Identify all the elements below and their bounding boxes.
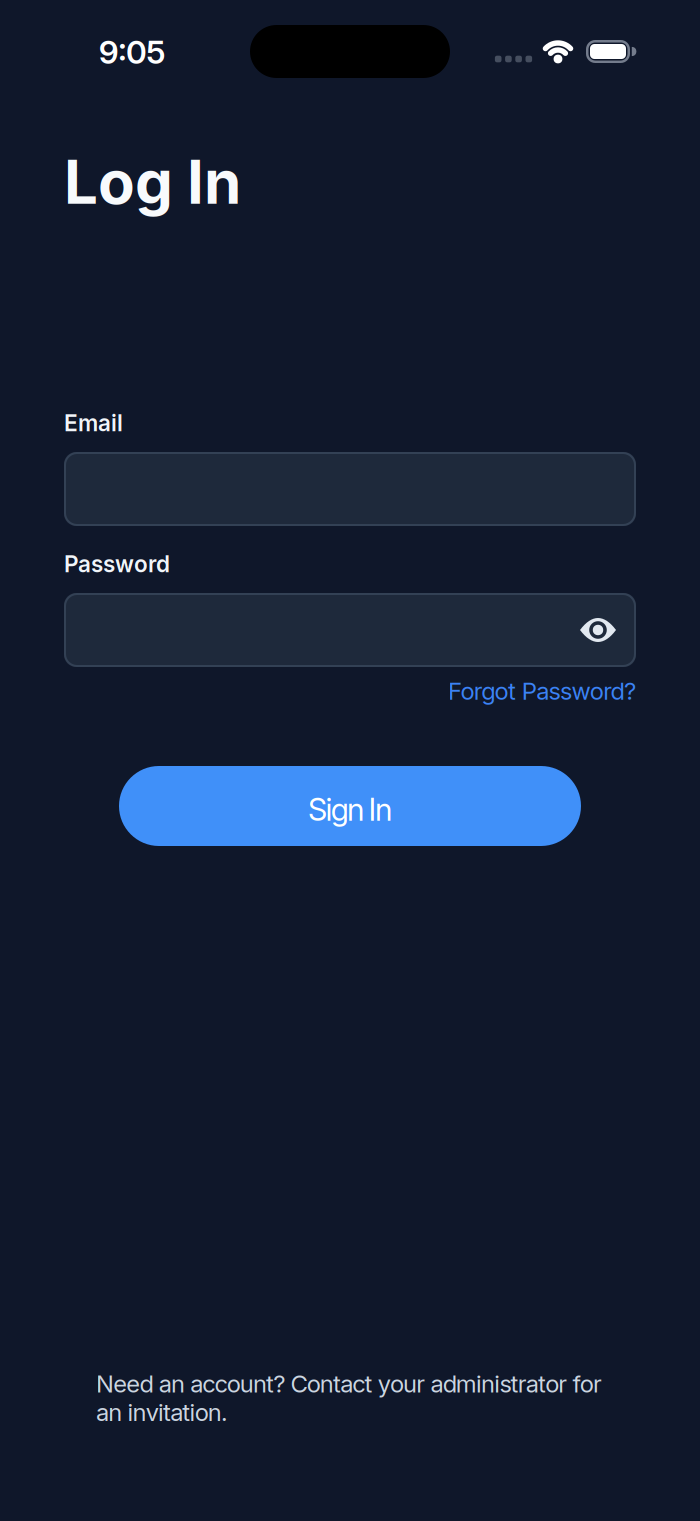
staticText: Log In (64, 147, 241, 217)
staticText: Forgot Password? (448, 677, 636, 705)
staticText: Need an account? Contact your administra… (96, 1370, 602, 1398)
button[interactable]: Forgot Password? (448, 677, 636, 705)
staticText: an invitation. (96, 1398, 228, 1426)
staticText: Sign In (308, 791, 392, 828)
staticText: Password (64, 551, 170, 577)
secureTextField[interactable] (88, 616, 612, 644)
staticText: Email (64, 410, 123, 436)
button[interactable]: Sign In (119, 766, 581, 846)
staticText: 9:05 (99, 33, 165, 71)
button[interactable]: Show password (568, 605, 628, 655)
